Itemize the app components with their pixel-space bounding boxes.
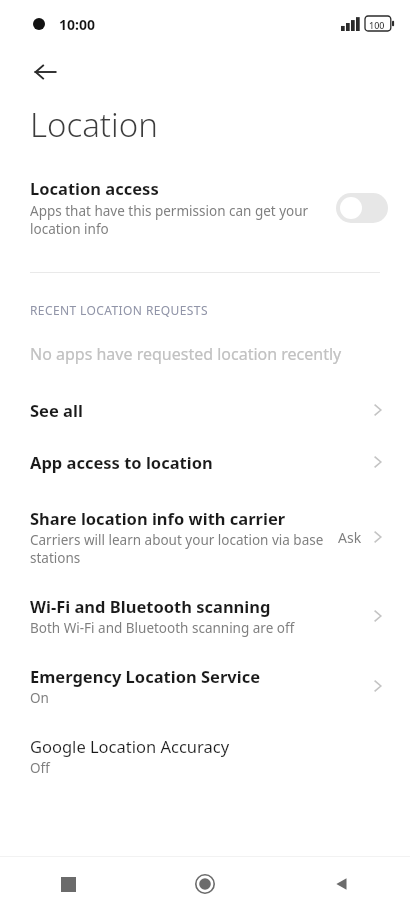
staticText: No apps have requested location recently — [30, 343, 342, 365]
button[interactable]: See all — [0, 389, 410, 431]
staticText: Emergency Location Service — [30, 665, 261, 687]
button[interactable]: Toggle location access — [336, 193, 388, 223]
button[interactable]: Share location info with carrier — [0, 491, 410, 581]
button[interactable]: Back — [273, 857, 410, 911]
staticText: App access to location — [30, 451, 213, 473]
button[interactable]: Location access — [0, 177, 410, 238]
staticText: Both Wi-Fi and Bluetooth scanning are of… — [30, 619, 295, 637]
staticText: Carriers will learn about your location … — [30, 531, 330, 567]
button[interactable]: App access to location — [0, 431, 410, 491]
button[interactable]: Google Location Accuracy — [0, 721, 410, 787]
staticText: Location access — [30, 177, 159, 199]
staticText: 100 — [369, 19, 385, 31]
staticText: See all — [30, 399, 83, 421]
staticText: Off — [30, 759, 50, 777]
staticText: Google Location Accuracy — [30, 735, 230, 757]
staticText: 10:00 — [59, 15, 95, 34]
staticText: RECENT LOCATION REQUESTS — [30, 302, 208, 318]
button[interactable]: Back — [21, 48, 69, 96]
staticText: Wi-Fi and Bluetooth scanning — [30, 595, 271, 617]
staticText: Ask — [338, 528, 362, 547]
staticText: On — [30, 689, 49, 707]
button[interactable]: Emergency Location Service — [0, 651, 410, 721]
button[interactable]: Home — [136, 857, 273, 911]
staticText: Apps that have this permission can get y… — [30, 202, 322, 238]
button[interactable]: Recent apps — [0, 857, 136, 911]
staticText: Location — [30, 102, 158, 147]
staticText: Share location info with carrier — [30, 507, 286, 529]
button[interactable]: Wi-Fi and Bluetooth scanning — [0, 581, 410, 651]
